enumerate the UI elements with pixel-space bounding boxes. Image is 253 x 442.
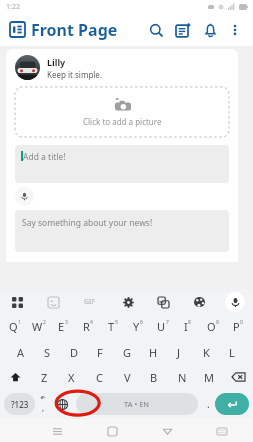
staticText: ,	[42, 402, 45, 413]
button[interactable]: Y	[125, 314, 150, 339]
button[interactable]: G	[117, 341, 137, 363]
staticText: H	[149, 345, 158, 360]
staticText: X	[68, 370, 75, 385]
staticText: D	[70, 345, 79, 360]
staticText: W	[32, 319, 43, 334]
button[interactable]: Comma	[35, 393, 51, 415]
staticText: K	[203, 345, 210, 360]
staticText: Front Page	[31, 19, 118, 41]
button[interactable]: Hide keyboard	[212, 421, 232, 441]
staticText: 4	[90, 319, 93, 326]
staticText: ?123	[11, 399, 29, 410]
button[interactable]: Stickers	[44, 293, 62, 311]
staticText: S	[44, 345, 51, 360]
staticText: B	[150, 370, 158, 385]
staticText: 5	[115, 319, 118, 326]
button[interactable]: I	[175, 314, 200, 339]
button[interactable]: S	[37, 341, 57, 363]
button[interactable]: B	[144, 366, 164, 388]
button[interactable]: P	[225, 314, 250, 339]
staticText: V	[124, 370, 131, 385]
staticText: TA • EN	[124, 399, 150, 409]
button[interactable]: U	[150, 314, 175, 339]
button[interactable]: Back	[157, 421, 177, 441]
staticText: 9	[216, 319, 219, 326]
staticText: E	[58, 319, 65, 334]
button[interactable]: X	[61, 366, 81, 388]
button[interactable]: Q	[3, 314, 27, 339]
staticText: M	[204, 370, 214, 385]
button[interactable]: Add a title!	[15, 145, 229, 183]
staticText: 0	[240, 319, 243, 326]
button[interactable]: K	[196, 341, 216, 363]
button[interactable]: F	[90, 341, 110, 363]
button[interactable]: Recents	[47, 421, 67, 441]
staticText: GIF	[84, 297, 96, 307]
button[interactable]: M	[199, 366, 219, 388]
staticText: U	[157, 319, 166, 334]
staticText: Keep it simple.	[47, 69, 103, 80]
button[interactable]: GIF	[79, 291, 101, 313]
staticText: P	[233, 319, 240, 334]
button[interactable]: H	[143, 341, 163, 363]
staticText: Add a title!	[23, 151, 66, 163]
button[interactable]: D	[64, 341, 84, 363]
staticText: I	[184, 319, 188, 334]
staticText: 1:22	[6, 2, 20, 12]
button[interactable]: Voice input	[15, 187, 34, 206]
button[interactable]: Home	[102, 421, 122, 441]
button[interactable]: T	[100, 314, 125, 339]
button[interactable]: Say something about your news!	[15, 210, 229, 252]
staticText: .	[207, 397, 210, 411]
button[interactable]: R	[75, 314, 100, 339]
staticText: J	[177, 345, 181, 360]
button[interactable]: Change keyboard language	[51, 393, 73, 415]
button[interactable]: Shift	[4, 366, 26, 388]
button[interactable]: J	[169, 341, 189, 363]
button[interactable]: Themes	[190, 293, 208, 311]
button[interactable]: V	[117, 366, 137, 388]
button[interactable]: Notifications	[200, 20, 220, 40]
button[interactable]: Click to add a picture	[15, 87, 229, 137]
button[interactable]: Period	[201, 393, 215, 415]
staticText: L	[229, 345, 235, 360]
button[interactable]: W	[27, 314, 51, 339]
button[interactable]: Backspace	[227, 366, 249, 388]
button[interactable]: New post	[173, 20, 193, 40]
staticText: Say something about your news!	[22, 217, 153, 229]
button[interactable]: Voice typing	[225, 292, 245, 312]
button[interactable]: Apps	[8, 293, 26, 311]
staticText: T	[108, 319, 115, 334]
staticText: 8	[188, 319, 191, 326]
staticText: F	[97, 345, 103, 360]
staticText: Y	[133, 319, 140, 334]
button[interactable]: O	[200, 314, 225, 339]
button[interactable]: E	[51, 314, 75, 339]
staticText: Click to add a picture	[83, 116, 162, 127]
staticText: C	[96, 370, 103, 385]
button[interactable]: TA • EN	[76, 393, 198, 415]
button[interactable]: Enter	[215, 393, 249, 415]
button[interactable]: Settings	[119, 293, 137, 311]
staticText: A	[17, 345, 25, 360]
button[interactable]: More options	[225, 20, 245, 40]
button[interactable]: ?123	[4, 393, 35, 415]
staticText: N	[178, 370, 187, 385]
button[interactable]: Search	[146, 20, 166, 40]
button[interactable]: N	[172, 366, 192, 388]
button[interactable]: Profile photo	[15, 55, 40, 80]
staticText: Z	[41, 370, 48, 385]
button[interactable]: C	[89, 366, 109, 388]
staticText: 6	[140, 319, 143, 326]
staticText: 3	[65, 319, 68, 326]
button[interactable]: App logo	[8, 20, 27, 39]
button[interactable]: Translate	[154, 293, 172, 311]
staticText: Q	[9, 319, 18, 334]
button[interactable]: L	[222, 341, 242, 363]
staticText: G	[123, 345, 132, 360]
staticText: O	[207, 319, 216, 334]
button[interactable]: A	[11, 341, 31, 363]
staticText: Lilly	[47, 56, 66, 68]
staticText: 2	[43, 319, 46, 326]
button[interactable]: Z	[34, 366, 54, 388]
